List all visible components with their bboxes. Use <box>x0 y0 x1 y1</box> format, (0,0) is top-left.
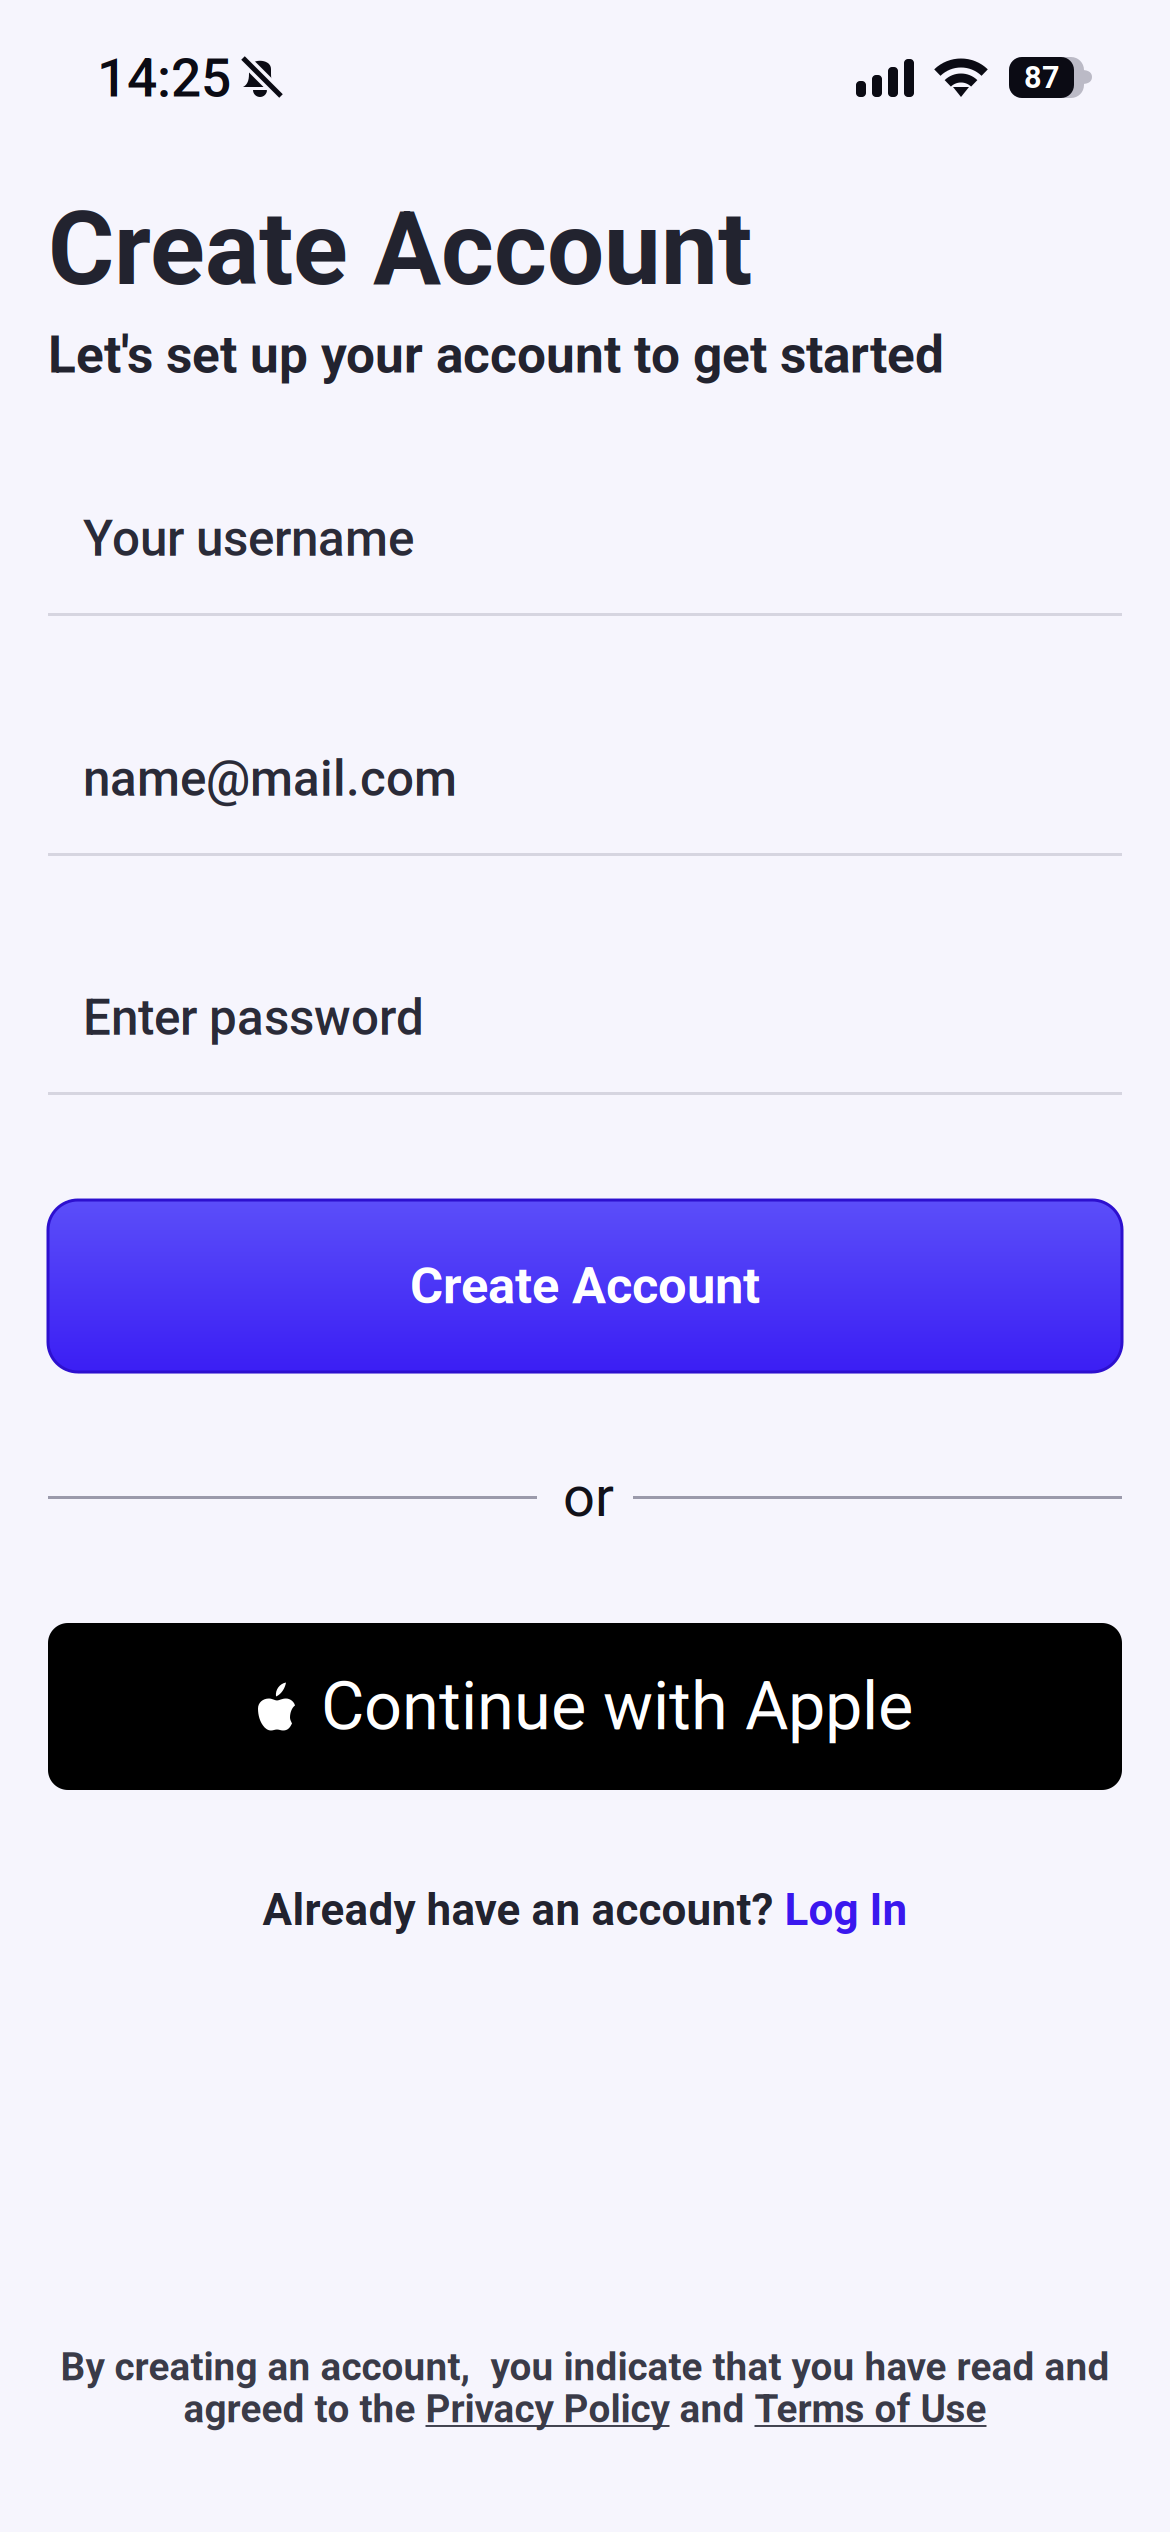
staticText: name@mail.com <box>83 750 457 808</box>
button[interactable]: name@mail.com <box>48 738 1122 856</box>
staticText: Create Account <box>410 1256 760 1316</box>
staticText: 14:25 <box>97 47 231 109</box>
staticText: agreed to the <box>183 2386 425 2432</box>
staticText: and <box>669 2386 754 2432</box>
staticText: 87 <box>1024 59 1060 95</box>
staticText: Let's set up your account to get started <box>48 325 944 385</box>
button[interactable]: Enter password <box>48 977 1122 1095</box>
staticText: By creating an account, you indicate tha… <box>60 2344 1109 2390</box>
button[interactable]: Your username <box>48 498 1122 616</box>
staticText: or <box>563 1464 614 1530</box>
staticText: Create Account <box>48 190 752 309</box>
button[interactable]: Create Account <box>48 1200 1122 1372</box>
button[interactable]: Privacy Policy <box>425 2386 669 2432</box>
staticText: Already have an account? <box>262 1884 784 1936</box>
staticText: Log In <box>784 1884 907 1936</box>
staticText: Terms of Use <box>754 2386 986 2432</box>
staticText: Continue with Apple <box>321 1667 913 1745</box>
button[interactable]: Log In <box>784 1884 907 1936</box>
staticText: Your username <box>83 510 414 568</box>
staticText: Privacy Policy <box>425 2386 669 2432</box>
button[interactable]: Terms of Use <box>754 2386 986 2432</box>
staticText: Enter password <box>83 989 424 1047</box>
button[interactable]: Continue with Apple <box>48 1623 1122 1790</box>
